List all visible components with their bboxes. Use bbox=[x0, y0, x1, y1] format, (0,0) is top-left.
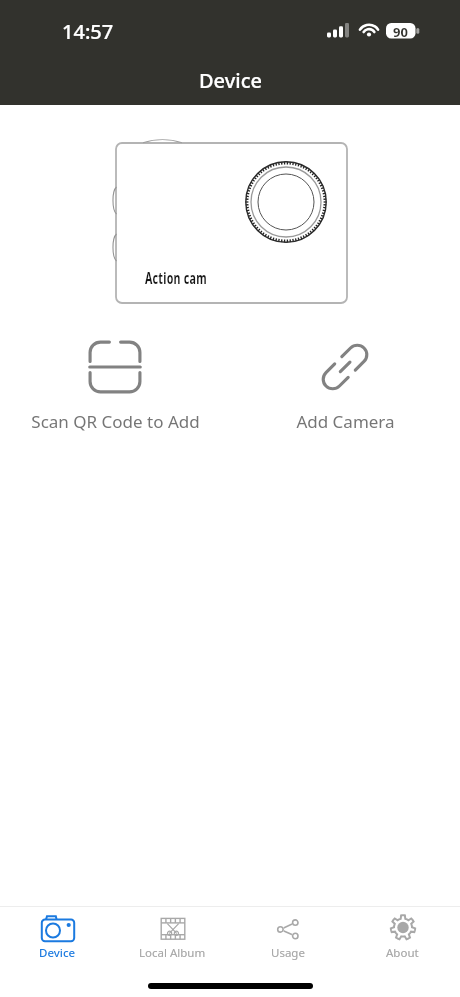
staticText: Usage bbox=[271, 945, 305, 961]
staticText: 90 bbox=[393, 23, 408, 38]
staticText: Local Album bbox=[139, 945, 206, 961]
staticText: About bbox=[386, 945, 419, 961]
button[interactable]: Scan QR Code to Add bbox=[0, 339, 230, 433]
staticText: Scan QR Code to Add bbox=[31, 410, 200, 433]
staticText: Device bbox=[199, 67, 262, 94]
button[interactable]: Usage bbox=[230, 907, 345, 961]
staticText: 14:57 bbox=[62, 18, 114, 45]
staticText: Add Camera bbox=[296, 410, 395, 433]
button[interactable]: Add Camera bbox=[230, 339, 460, 433]
staticText: Action cam bbox=[145, 267, 207, 288]
button[interactable]: Local Album bbox=[115, 907, 230, 961]
button[interactable]: About bbox=[345, 907, 460, 961]
button[interactable]: Device bbox=[0, 907, 115, 961]
staticText: Device bbox=[39, 945, 76, 961]
